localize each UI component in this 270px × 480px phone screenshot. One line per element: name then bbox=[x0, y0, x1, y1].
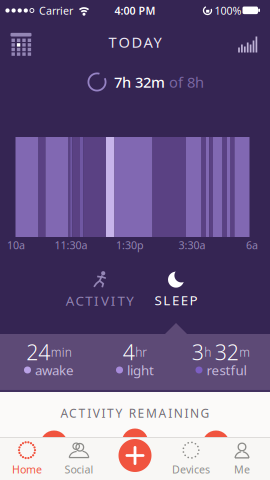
staticText: Carrier bbox=[39, 3, 73, 18]
staticText: 1:30p bbox=[116, 238, 144, 252]
button[interactable]: Activity suggestion bbox=[202, 430, 229, 457]
staticText: 4:00 PM bbox=[114, 3, 155, 18]
staticText: 11:30a bbox=[54, 238, 87, 252]
staticText: 6a bbox=[246, 238, 258, 252]
staticText: Devices bbox=[172, 462, 210, 476]
button[interactable]: Home bbox=[3, 439, 51, 479]
staticText: Me bbox=[234, 462, 250, 476]
staticText: 7h 32m bbox=[114, 72, 165, 92]
button[interactable]: Add bbox=[118, 439, 151, 472]
staticText: TODAY bbox=[108, 32, 161, 52]
staticText: of 8h bbox=[169, 72, 204, 92]
button[interactable]: ACTIVITY bbox=[58, 268, 142, 312]
button[interactable]: Me bbox=[218, 439, 266, 479]
button[interactable]: Devices bbox=[167, 439, 215, 479]
staticText: awake bbox=[35, 361, 74, 379]
staticText: Social bbox=[64, 462, 93, 476]
staticText: min bbox=[51, 344, 72, 360]
staticText: m bbox=[239, 344, 250, 360]
staticText: 4 bbox=[123, 338, 135, 366]
staticText: 3:30a bbox=[178, 238, 205, 252]
staticText: light bbox=[127, 361, 154, 379]
staticText: hr bbox=[135, 344, 147, 360]
staticText: 32 bbox=[215, 338, 239, 366]
staticText: SLEEP bbox=[154, 291, 198, 309]
staticText: Home bbox=[12, 462, 42, 476]
staticText: 100% bbox=[214, 3, 241, 18]
button[interactable]: Statistics bbox=[232, 28, 264, 60]
button[interactable]: Calendar bbox=[4, 26, 38, 60]
button[interactable]: Activity suggestion bbox=[40, 430, 67, 457]
staticText: restful bbox=[206, 361, 246, 379]
button[interactable]: SLEEP bbox=[144, 268, 208, 312]
staticText: ACTIVITY REMAINING bbox=[60, 405, 210, 421]
staticText: 3 bbox=[192, 338, 204, 366]
staticText: 24 bbox=[26, 338, 50, 366]
staticText: 10a bbox=[7, 238, 25, 252]
staticText: h bbox=[204, 344, 214, 360]
staticText: ACTIVITY bbox=[66, 292, 134, 309]
button[interactable]: Social bbox=[55, 439, 103, 479]
